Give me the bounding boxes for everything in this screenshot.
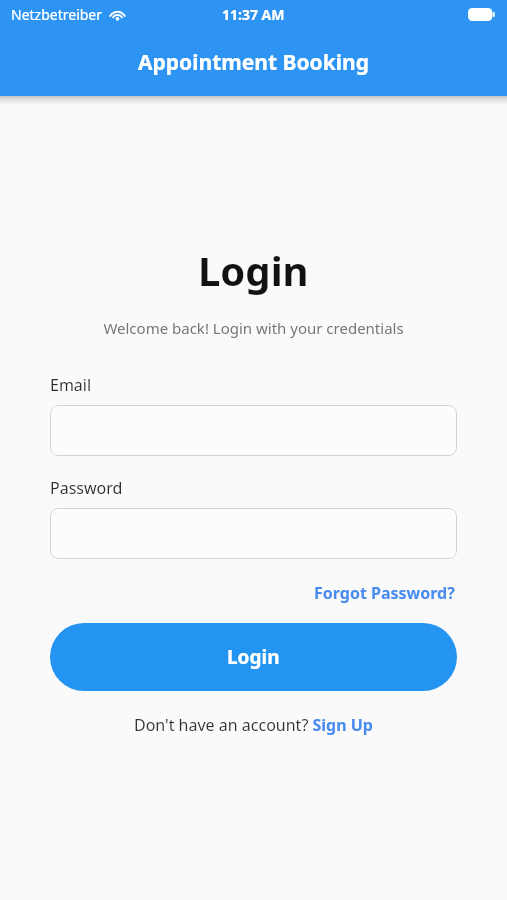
staticText: Appointment Booking: [138, 48, 369, 77]
staticText: 11:37 AM: [222, 5, 285, 24]
staticText: Don't have an account? Sign Up: [134, 714, 373, 736]
staticText: Forgot Password?: [314, 582, 455, 604]
button[interactable]: Login: [50, 623, 457, 691]
staticText: Login: [227, 644, 280, 670]
staticText: Login: [198, 243, 309, 297]
staticText: Netzbetreiber: [11, 5, 103, 24]
staticText: Email: [50, 374, 92, 396]
button[interactable]: Don't have an account? Sign Up: [132, 712, 375, 738]
button[interactable]: Text input field: [50, 405, 457, 456]
staticText: Password: [50, 477, 123, 499]
staticText: Welcome back! Login with your credential…: [103, 318, 404, 338]
button[interactable]: Forgot Password?: [312, 579, 457, 607]
button[interactable]: Text input field: [50, 508, 457, 559]
